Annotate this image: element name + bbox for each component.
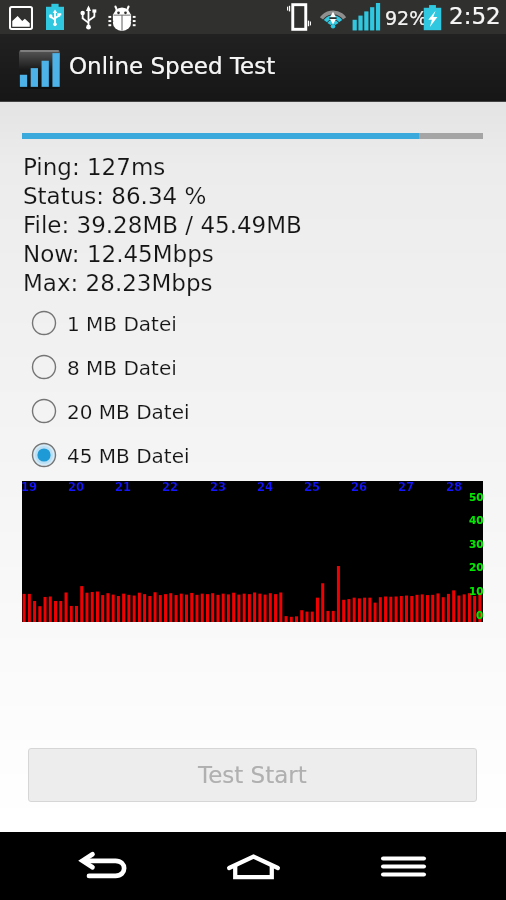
staticText: 28 xyxy=(446,480,463,493)
staticText: 1 MB Datei xyxy=(67,312,177,335)
button[interactable]: Back xyxy=(69,832,138,900)
staticText: 26 xyxy=(351,480,368,493)
staticText: 20 MB Datei xyxy=(67,400,190,423)
staticText: 27 xyxy=(398,480,415,493)
staticText: Online Speed Test xyxy=(69,53,276,80)
staticText: Max: 28.23Mbps xyxy=(23,270,213,297)
staticText: 10 xyxy=(469,585,484,597)
button[interactable]: 8 MB Datei xyxy=(0,345,506,389)
button[interactable]: Home xyxy=(219,832,288,900)
staticText: 45 MB Datei xyxy=(67,444,190,467)
staticText: 0 xyxy=(476,609,484,621)
staticText: 40 xyxy=(469,514,484,526)
button[interactable]: Test Start xyxy=(28,748,477,802)
staticText: 20 xyxy=(68,480,85,493)
staticText: 23 xyxy=(210,480,227,493)
staticText: 24 xyxy=(257,480,274,493)
staticText: 22 xyxy=(162,480,179,493)
staticText: 20 xyxy=(469,561,484,573)
staticText: Test Start xyxy=(198,762,307,789)
button[interactable]: Recent apps xyxy=(369,832,438,900)
staticText: Status: 86.34 % xyxy=(23,183,207,210)
button[interactable]: 1 MB Datei xyxy=(0,301,506,345)
button[interactable]: 45 MB Datei xyxy=(0,433,506,477)
staticText: Ping: 127ms xyxy=(23,154,166,181)
staticText: 92% xyxy=(385,7,428,29)
staticText: 2:52 xyxy=(449,3,501,30)
staticText: Now: 12.45Mbps xyxy=(23,241,214,268)
staticText: 8 MB Datei xyxy=(67,356,177,379)
staticText: 30 xyxy=(469,538,484,550)
staticText: 19 xyxy=(21,480,38,493)
staticText: 50 xyxy=(469,491,484,503)
button[interactable]: 20 MB Datei xyxy=(0,389,506,433)
staticText: 25 xyxy=(304,480,321,493)
staticText: File: 39.28MB / 45.49MB xyxy=(23,212,302,239)
staticText: 21 xyxy=(115,480,132,493)
